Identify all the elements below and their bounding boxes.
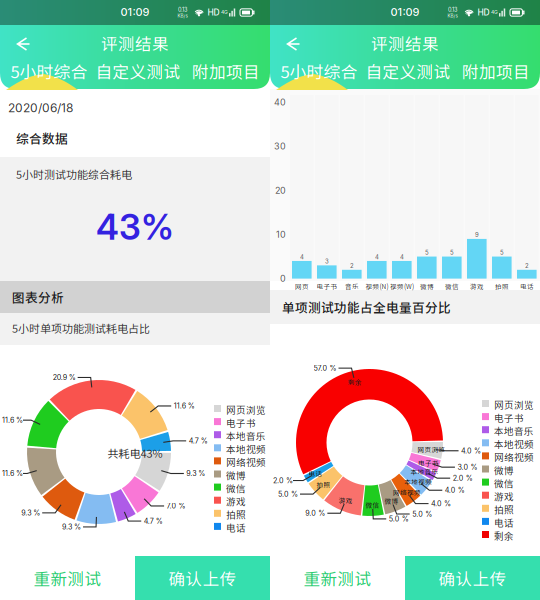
staticText: 网页浏览 — [494, 398, 534, 411]
staticText: 5小时综合 — [280, 59, 357, 83]
staticText: 重新测试 — [33, 566, 101, 590]
staticText: 综合数据 — [16, 129, 68, 147]
staticText: 网络视频 — [393, 487, 421, 497]
button[interactable]: 确认上传 — [135, 556, 270, 600]
staticText: 9 — [475, 231, 479, 239]
staticText: 网络视频 — [226, 455, 266, 469]
staticText: 电话 — [308, 469, 322, 478]
staticText: 电话 — [494, 515, 514, 529]
staticText: 3 — [325, 258, 329, 265]
staticText: 微博 — [226, 468, 246, 482]
staticText: 微博 — [420, 281, 434, 291]
staticText: 2 — [350, 262, 354, 269]
staticText: 4G — [491, 9, 498, 15]
staticText: 4 — [300, 253, 304, 261]
staticText: 网页 — [295, 281, 309, 291]
staticText: 剩余 — [494, 529, 514, 542]
staticText: 7.0 % — [167, 502, 186, 510]
staticText: 5.0 % — [389, 515, 409, 523]
staticText: 拍照 — [226, 507, 246, 521]
staticText: 4.0 % — [431, 499, 451, 508]
button[interactable]: 重新测试 — [0, 556, 135, 600]
staticText: 57.0 % — [313, 364, 336, 372]
staticText: 微信 — [365, 500, 379, 509]
staticText: 0 — [280, 273, 286, 284]
button[interactable]: 返回 — [0, 0, 270, 600]
staticText: 网页浏览 — [417, 444, 445, 454]
staticText: 4 — [400, 253, 404, 261]
staticText: 电话 — [226, 520, 246, 534]
staticText: 9.3 % — [62, 523, 81, 531]
staticText: 游戏 — [339, 495, 353, 505]
staticText: 电子书 — [316, 281, 337, 291]
staticText: 4 — [375, 253, 379, 261]
staticText: 3.0 % — [457, 463, 477, 471]
staticText: 本地音乐 — [411, 467, 439, 476]
staticText: 本地视频 — [404, 477, 432, 486]
staticText: 视频(N) — [365, 281, 388, 291]
staticText: 确认上传 — [168, 566, 236, 590]
staticText: 拍照 — [494, 502, 514, 516]
staticText: 5 — [425, 249, 429, 256]
button[interactable]: 自定义测试 — [94, 59, 182, 83]
staticText: 5.0 % — [412, 510, 432, 518]
staticText: HD — [207, 7, 219, 18]
staticText: 附加项目 — [192, 59, 260, 83]
staticText: 4.7 % — [189, 436, 208, 445]
staticText: 20 — [275, 185, 286, 196]
staticText: 本地视频 — [494, 437, 534, 451]
staticText: 2.0 % — [453, 474, 473, 482]
staticText: 0.13 — [178, 6, 187, 13]
staticText: 30 — [274, 141, 286, 152]
staticText: 01:09 — [120, 5, 149, 19]
staticText: 9.3 % — [186, 469, 205, 478]
staticText: 电子书 — [494, 411, 524, 424]
staticText: 11.6 % — [174, 402, 195, 410]
staticText: 音乐 — [345, 281, 359, 291]
staticText: 0.13 — [448, 6, 457, 13]
button[interactable]: 自定义测试 — [364, 59, 452, 83]
staticText: 附加项目 — [462, 59, 530, 83]
staticText: 11.6 % — [2, 416, 23, 424]
staticText: 20.9 % — [53, 373, 76, 382]
staticText: 2020/06/18 — [8, 101, 73, 115]
staticText: 9.3 % — [21, 508, 40, 517]
staticText: 剩余 — [348, 377, 362, 387]
button[interactable]: 5小时综合 — [276, 59, 362, 83]
staticText: KB/s — [447, 13, 457, 19]
staticText: 4.0 % — [445, 486, 465, 495]
staticText: 5小时综合 — [10, 59, 87, 83]
staticText: 5小时测试功能综合耗电 — [16, 166, 132, 182]
staticText: 确认上传 — [438, 566, 506, 590]
staticText: 4.0 % — [461, 446, 481, 455]
button[interactable]: 重新测试 — [270, 556, 405, 600]
staticText: 重新测试 — [303, 566, 371, 590]
button[interactable]: 附加项目 — [456, 59, 536, 83]
staticText: 5 — [450, 249, 454, 256]
staticText: 自定义测试 — [95, 59, 180, 83]
staticText: 2 — [525, 262, 529, 269]
staticText: 自定义测试 — [365, 59, 450, 83]
staticText: 本地音乐 — [494, 424, 534, 438]
staticText: 11.6 % — [2, 469, 23, 478]
staticText: 微博 — [494, 463, 514, 477]
staticText: 游戏 — [226, 494, 246, 508]
staticText: 10 — [276, 229, 286, 240]
staticText: 电子书 — [226, 416, 256, 429]
button[interactable]: 附加项目 — [186, 59, 266, 83]
staticText: 本地音乐 — [226, 429, 266, 443]
staticText: 拍照 — [316, 480, 330, 489]
staticText: 微信 — [226, 481, 246, 495]
staticText: 40 — [274, 97, 286, 108]
staticText: 01:09 — [390, 5, 419, 19]
button[interactable]: 返回 — [270, 0, 540, 600]
staticText: 拍照 — [495, 281, 509, 291]
button[interactable]: 5小时综合 — [6, 59, 92, 83]
button[interactable]: 确认上传 — [405, 556, 540, 600]
staticText: 游戏 — [470, 281, 484, 291]
staticText: 4G — [221, 9, 228, 15]
staticText: 9.0 % — [305, 509, 325, 518]
staticText: 共耗电43% — [107, 445, 162, 461]
staticText: 评测结果 — [371, 31, 439, 55]
staticText: 网页浏览 — [226, 403, 266, 416]
